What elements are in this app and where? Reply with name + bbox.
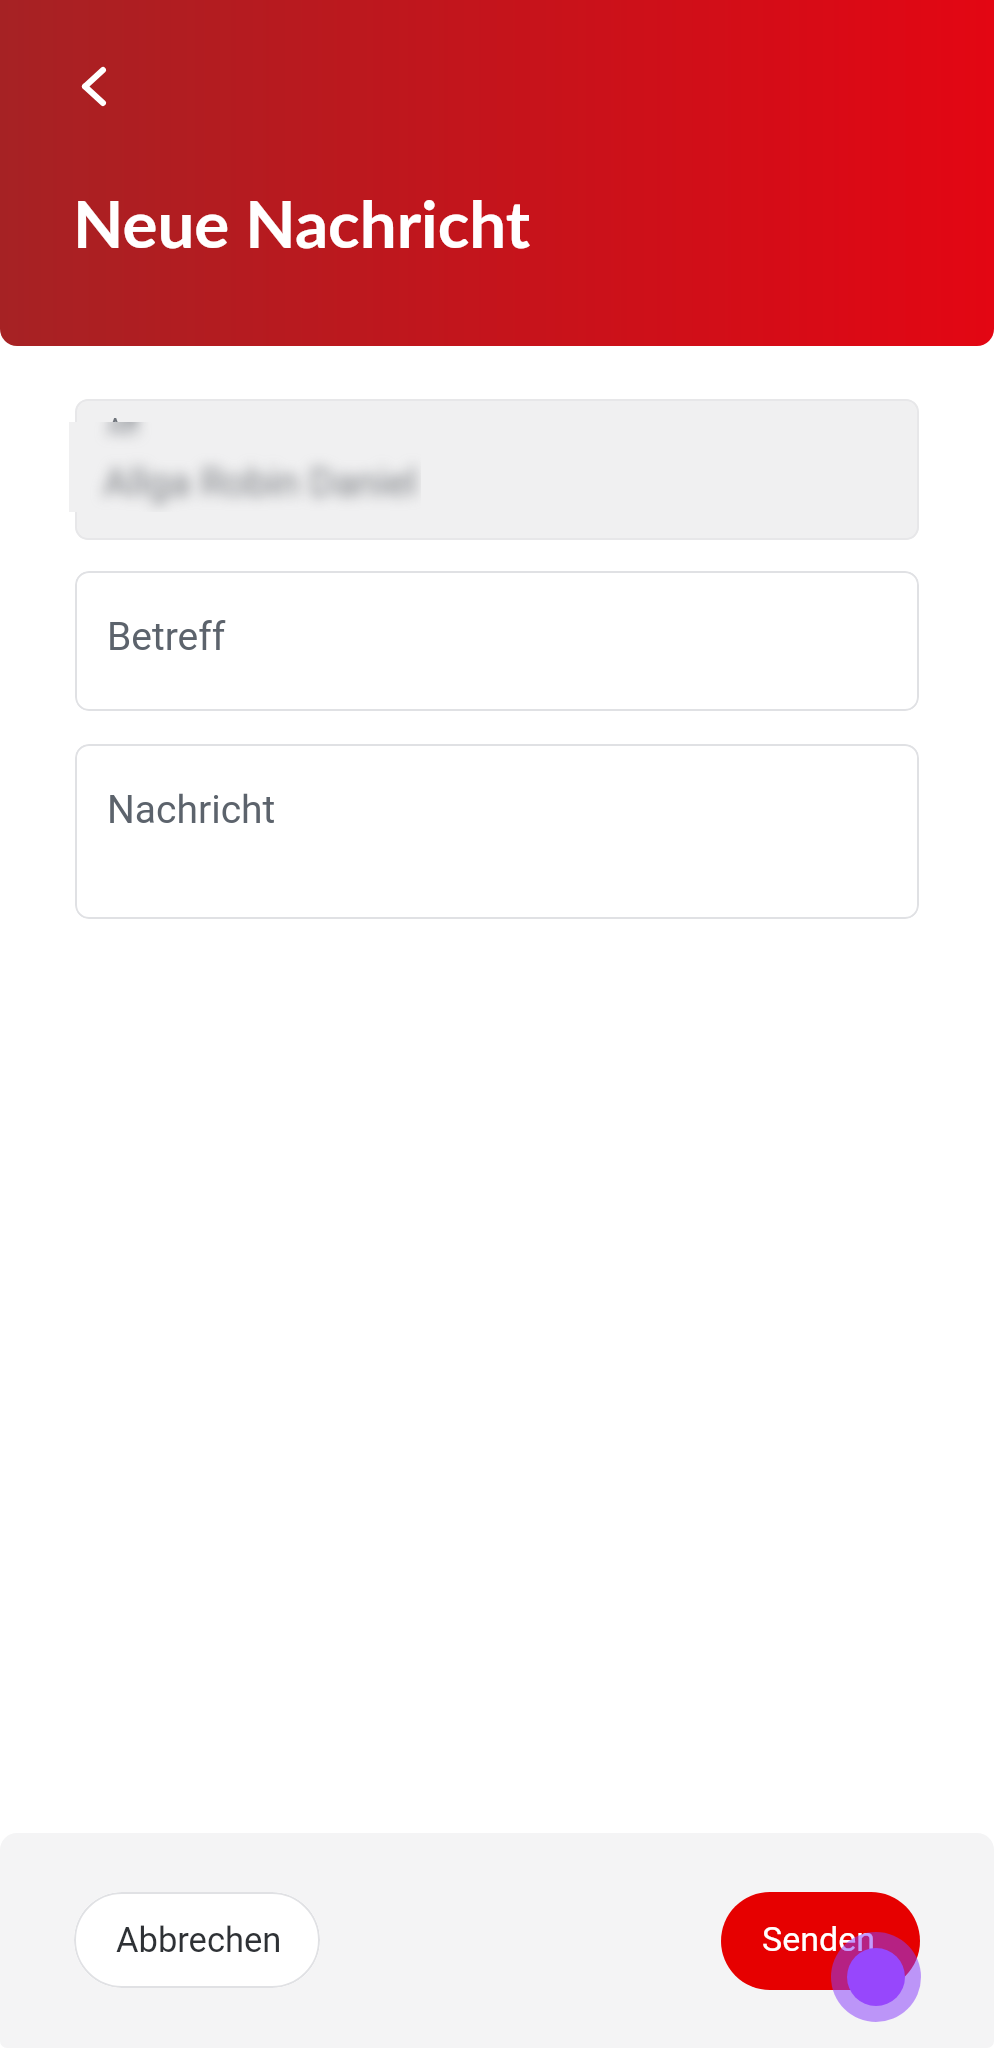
- staticText: Senden: [762, 1919, 875, 1959]
- button[interactable]: Back: [52, 54, 117, 119]
- button[interactable]: Betreff: [75, 571, 919, 711]
- staticText: Neue Nachricht: [73, 183, 531, 262]
- button[interactable]: Abbrechen: [74, 1892, 320, 1988]
- button[interactable]: Nachricht: [75, 744, 919, 919]
- staticText: An: [107, 414, 138, 443]
- staticText: Abbrechen: [116, 1920, 282, 1960]
- button[interactable]: An: [75, 399, 919, 540]
- staticText: An: [107, 422, 139, 441]
- staticText: Nachricht: [107, 787, 276, 833]
- button[interactable]: Senden: [721, 1892, 920, 1990]
- staticText: Betreff: [107, 614, 226, 660]
- staticText: Allga Robin Daniel: [103, 460, 418, 506]
